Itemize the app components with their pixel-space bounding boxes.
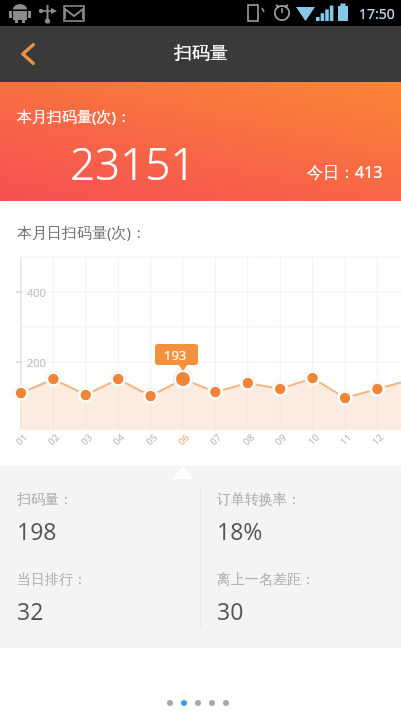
staticText: 10 <box>305 431 322 448</box>
staticText: 11 <box>337 431 354 448</box>
staticText: 12 <box>369 431 386 448</box>
staticText: 04 <box>110 431 127 448</box>
staticText: 17:50 <box>359 4 395 23</box>
staticText: 07 <box>207 431 224 448</box>
staticText: 30 <box>217 595 244 626</box>
button[interactable] <box>223 700 229 706</box>
staticText: 05 <box>143 431 160 448</box>
staticText: 扫码量 <box>174 42 228 65</box>
staticText: 02 <box>45 431 62 448</box>
staticText: 01 <box>13 431 30 448</box>
staticText: 18% <box>217 515 263 546</box>
staticText: 06 <box>175 431 192 448</box>
button[interactable] <box>181 700 187 706</box>
button[interactable] <box>209 700 215 706</box>
staticText: 扫码量： <box>17 491 73 509</box>
staticText: 09 <box>272 431 289 448</box>
button[interactable] <box>167 700 173 706</box>
button[interactable] <box>195 700 201 706</box>
button[interactable]: 193 <box>155 344 198 365</box>
button[interactable]: Back <box>0 26 56 82</box>
staticText: 本月日扫码量(次)： <box>17 222 147 242</box>
staticText: 离上一名差距： <box>217 571 315 589</box>
staticText: 本月扫码量(次)： <box>17 106 132 126</box>
staticText: 400 <box>27 285 46 300</box>
staticText: 23151 <box>70 133 196 193</box>
staticText: 32 <box>17 595 44 626</box>
staticText: 198 <box>17 515 57 546</box>
staticText: 今日：413 <box>307 161 383 183</box>
staticText: 193 <box>164 346 187 364</box>
staticText: 订单转换率： <box>217 491 301 509</box>
staticText: 08 <box>240 431 257 448</box>
staticText: 03 <box>78 431 95 448</box>
staticText: 200 <box>27 355 46 370</box>
staticText: 当日排行： <box>17 571 87 589</box>
